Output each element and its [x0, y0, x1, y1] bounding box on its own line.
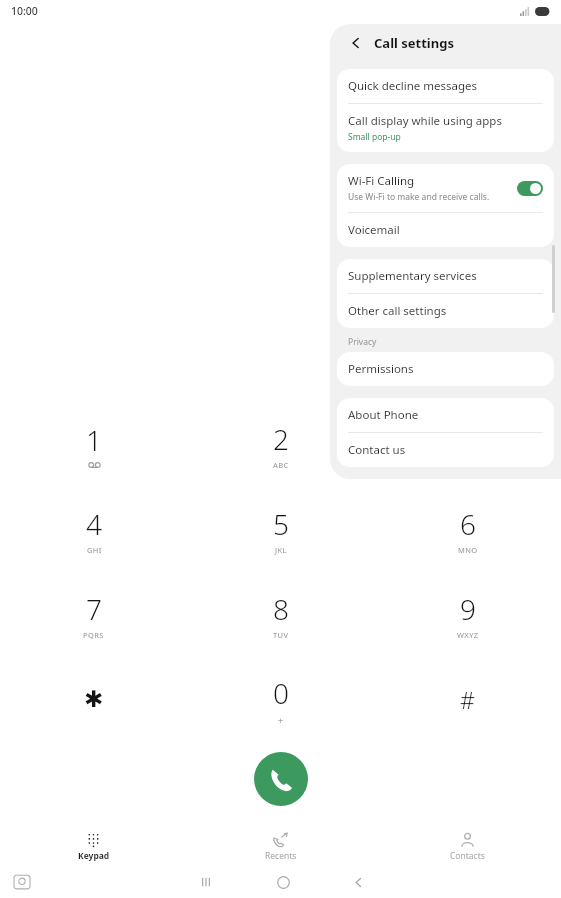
- button[interactable]: Wi-Fi Calling: [337, 164, 554, 212]
- staticText: Call display while using apps: [348, 113, 502, 129]
- button[interactable]: 5: [187, 487, 374, 572]
- staticText: Privacy: [348, 336, 377, 348]
- staticText: Contact us: [348, 442, 406, 458]
- button[interactable]: 6: [374, 487, 561, 572]
- button[interactable]: Keypad: [0, 830, 187, 864]
- button[interactable]: Home: [269, 868, 297, 896]
- staticText: 1: [86, 421, 102, 459]
- staticText: MNO: [458, 545, 478, 555]
- button[interactable]: 4: [0, 487, 187, 572]
- button[interactable]: Quick decline messages: [337, 69, 554, 103]
- button[interactable]: Call: [254, 752, 308, 806]
- button[interactable]: 7: [0, 572, 187, 657]
- staticText: Voicemail: [348, 222, 400, 238]
- button[interactable]: Back: [344, 31, 368, 55]
- staticText: 9: [460, 590, 476, 628]
- staticText: Permissions: [348, 361, 414, 377]
- button[interactable]: 8: [187, 572, 374, 657]
- staticText: GHI: [87, 545, 102, 555]
- button[interactable]: ✱: [0, 657, 187, 742]
- button[interactable]: 2: [187, 402, 374, 487]
- button[interactable]: Wi-Fi Calling toggle: [517, 181, 543, 196]
- staticText: #: [460, 684, 475, 715]
- staticText: PQRS: [83, 630, 104, 640]
- button[interactable]: 1: [0, 402, 187, 487]
- staticText: Quick decline messages: [348, 78, 478, 94]
- button[interactable]: Contacts: [374, 830, 561, 864]
- staticText: TUV: [273, 630, 289, 640]
- staticText: Small pop-up: [348, 131, 401, 143]
- staticText: Recents: [265, 850, 297, 862]
- staticText: ✱: [84, 686, 104, 713]
- staticText: Other call settings: [348, 303, 447, 319]
- button[interactable]: Other call settings: [337, 294, 554, 328]
- button[interactable]: Permissions: [337, 352, 554, 386]
- button[interactable]: Voicemail: [337, 213, 554, 247]
- button[interactable]: About Phone: [337, 398, 554, 432]
- button[interactable]: Recent apps: [192, 868, 220, 896]
- staticText: Wi-Fi Calling: [348, 173, 415, 189]
- staticText: DEF: [461, 460, 476, 470]
- staticText: ABC: [273, 460, 289, 470]
- staticText: Use Wi-Fi to make and receive calls.: [348, 191, 490, 203]
- staticText: Supplementary services: [348, 268, 477, 284]
- staticText: 4: [86, 505, 102, 543]
- button[interactable]: 9: [374, 572, 561, 657]
- staticText: 10:00: [11, 4, 38, 18]
- staticText: Call settings: [374, 34, 454, 52]
- staticText: 5: [273, 505, 289, 543]
- button[interactable]: #: [374, 657, 561, 742]
- staticText: 0: [273, 674, 289, 712]
- staticText: 7: [86, 590, 102, 628]
- button[interactable]: Back: [344, 868, 372, 896]
- staticText: 8: [273, 590, 289, 628]
- staticText: 2: [273, 420, 289, 458]
- button[interactable]: Screenshot: [14, 874, 30, 890]
- button[interactable]: Supplementary services: [337, 259, 554, 293]
- staticText: 6: [460, 505, 476, 543]
- button[interactable]: Call display while using apps: [337, 104, 554, 152]
- button[interactable]: Contact us: [337, 433, 554, 467]
- staticText: Keypad: [78, 850, 110, 862]
- staticText: JKL: [275, 545, 287, 555]
- staticText: WXYZ: [457, 630, 479, 640]
- staticText: About Phone: [348, 407, 419, 423]
- staticText: Contacts: [450, 850, 485, 862]
- button[interactable]: 0: [187, 657, 374, 742]
- staticText: 3: [460, 420, 476, 458]
- button[interactable]: Recents: [187, 830, 374, 864]
- button[interactable]: 3: [374, 402, 561, 487]
- staticText: +: [278, 714, 284, 726]
